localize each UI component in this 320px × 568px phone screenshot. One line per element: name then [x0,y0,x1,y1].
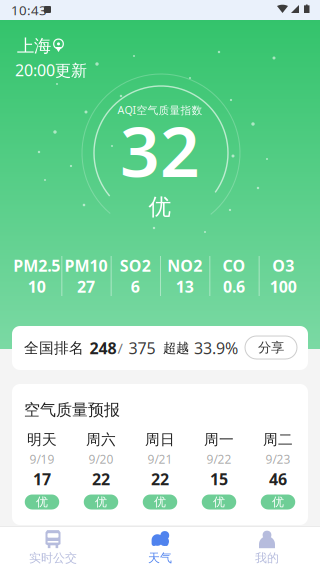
staticText: 上海 [17,35,51,57]
staticText: 6 [131,276,140,297]
button[interactable]: 天气 [106,527,214,568]
staticText: 周六 [86,430,116,448]
staticText: 周日 [145,430,175,448]
button[interactable]: 我的 [214,527,320,568]
staticText: 明天 [27,430,57,448]
staticText: 周一 [204,430,234,448]
staticText: 15 [210,468,228,490]
staticText: 全国排名 [24,339,84,357]
staticText: PM10 [64,255,107,276]
staticText: 0.6 [223,276,245,297]
staticText: 9/23 [265,451,290,467]
staticText: 9/20 [88,451,113,467]
button[interactable]: 分享 [245,336,297,359]
staticText: 46 [269,468,287,490]
button[interactable]: 实时公交 [0,527,106,568]
staticText: 248 [89,337,116,359]
staticText: 33.9% [194,337,238,359]
staticText: 27 [77,276,95,297]
staticText: 优 [36,495,48,509]
staticText: CO [222,255,245,276]
staticText: 10:43 [11,1,47,19]
staticText: 实时公交 [29,551,77,565]
staticText: 20:00更新 [15,59,87,81]
staticText: 22 [92,468,110,490]
staticText: 超越 [163,340,189,356]
staticText: 375 [128,337,155,359]
staticText: 优 [95,495,107,509]
staticText: NO2 [167,255,202,276]
staticText: 天气 [148,551,172,565]
staticText: 优 [154,495,166,509]
staticText: 优 [272,495,284,509]
staticText: AQI空气质量指数 [117,103,202,117]
staticText: 100 [270,276,297,297]
staticText: 22 [151,468,169,490]
staticText: 优 [148,193,171,221]
staticText: SO2 [120,255,151,276]
staticText: O3 [272,255,294,276]
staticText: 13 [176,276,194,297]
staticText: 空气质量预报 [24,400,120,420]
staticText: 我的 [255,551,279,565]
staticText: 优 [213,495,225,509]
staticText: PM2.5 [13,255,60,276]
staticText: 32 [120,104,200,196]
staticText: 9/19 [29,451,54,467]
staticText: 分享 [258,339,284,356]
staticText: 9/21 [147,451,172,467]
staticText: 9/22 [206,451,231,467]
staticText: 周二 [263,430,293,448]
staticText: / [117,338,122,358]
staticText: 10 [28,276,46,297]
staticText: 17 [33,468,51,490]
